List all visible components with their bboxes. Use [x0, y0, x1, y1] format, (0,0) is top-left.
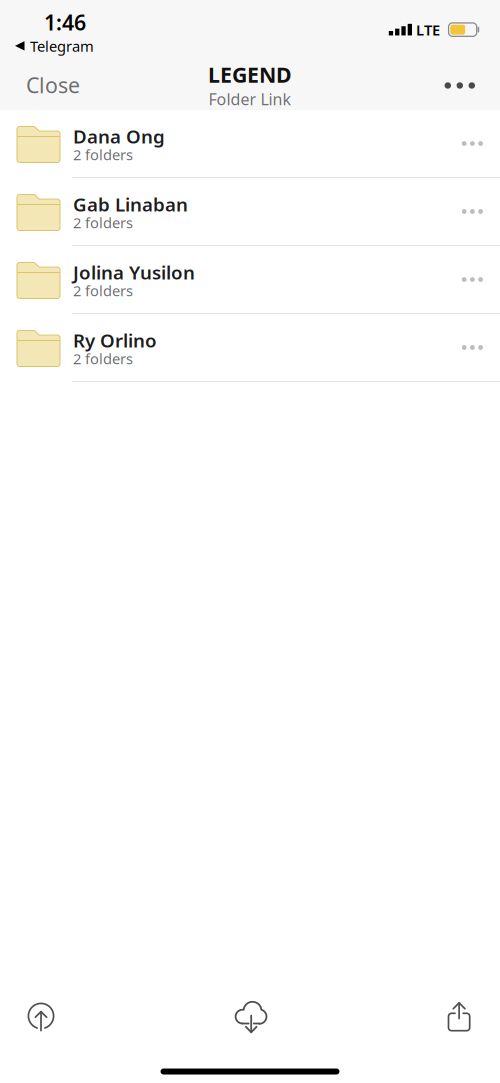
button[interactable]: Dana Ong — [0, 110, 500, 177]
button[interactable]: Share — [433, 989, 500, 1044]
staticText: Folder Link — [208, 88, 291, 110]
staticText: 2 folders — [73, 349, 133, 368]
staticText: Close — [26, 71, 80, 99]
button[interactable]: Jolina Yusilon — [0, 246, 500, 313]
staticText: Telegram — [30, 36, 94, 56]
button[interactable]: Download — [217, 989, 285, 1045]
staticText: Jolina Yusilon — [73, 260, 195, 285]
button[interactable]: Gab Linaban — [0, 178, 500, 245]
staticText: 2 folders — [73, 281, 133, 300]
staticText: Dana Ong — [73, 124, 165, 149]
staticText: Gab Linaban — [73, 192, 188, 217]
staticText: 1:46 — [44, 8, 86, 36]
staticText: LTE — [416, 20, 440, 40]
button[interactable]: More — [429, 64, 500, 101]
staticText: LEGEND — [208, 60, 292, 88]
staticText: 2 folders — [73, 145, 133, 164]
staticText: Ry Orlino — [73, 328, 157, 353]
button[interactable]: Close — [0, 57, 94, 108]
button[interactable]: Ry Orlino — [0, 314, 500, 381]
button[interactable]: Upload — [0, 990, 69, 1044]
staticText: 2 folders — [73, 213, 133, 232]
